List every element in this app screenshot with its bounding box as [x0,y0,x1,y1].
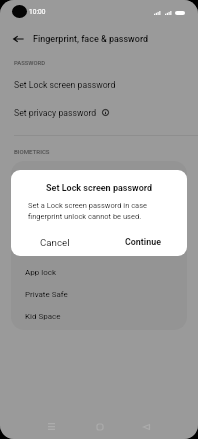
staticText: Set Lock screen password [14,80,116,90]
staticText: PASSWORD [14,60,46,67]
staticText: BIOMETRICS [14,148,50,155]
staticText: Set privacy password [14,108,97,118]
button[interactable]: Set privacy password [0,104,198,121]
button[interactable]: Private Safe [11,283,187,305]
button[interactable]: Face unlock [11,229,187,251]
staticText: Cancel [40,237,70,248]
staticText: Face [25,214,43,223]
staticText: Face unlock [25,236,68,245]
staticText: App lock [25,268,56,277]
staticText: 10:00 [29,8,46,16]
button[interactable]: Continue [99,232,187,252]
button[interactable]: App lock [11,261,187,283]
button[interactable]: Cancel [11,232,99,252]
button[interactable]: Fingerprint [11,163,187,185]
staticText: Set Lock screen password [46,183,152,194]
button[interactable]: Add fingerprint [11,185,187,207]
staticText: Fingerprint, face & password [33,34,149,45]
button[interactable]: Set Lock screen password [0,76,198,93]
staticText: Private Safe [25,290,68,299]
staticText: Set a Lock screen password in case finge… [28,201,148,221]
staticText: Kid Space [25,312,61,321]
button[interactable]: Kid Space [11,305,187,327]
button[interactable]: Face [11,207,187,229]
staticText: Continue [125,237,161,247]
button[interactable]: Back [6,27,30,51]
